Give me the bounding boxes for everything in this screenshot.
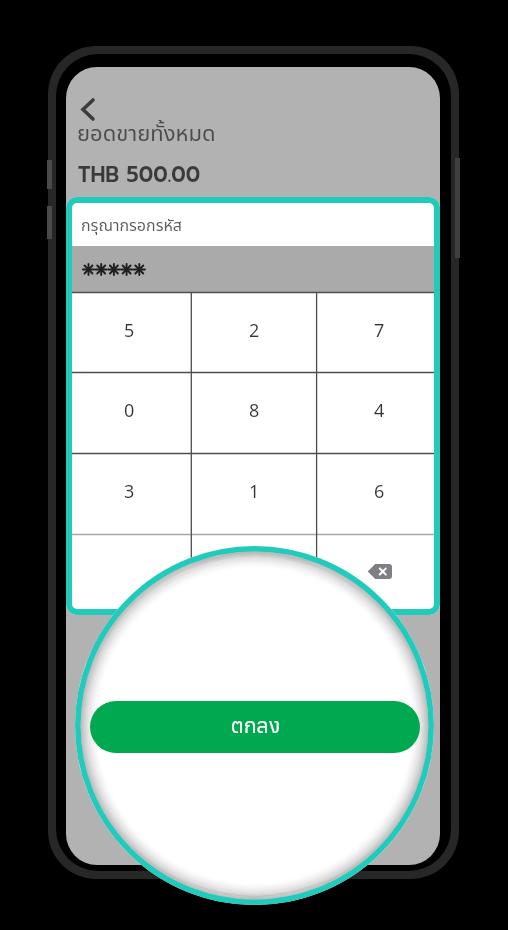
button[interactable]: 2 [190, 292, 316, 372]
staticText: 0 [124, 398, 135, 425]
staticText: 5 [124, 318, 135, 345]
staticText: กรุณากรอกรหัส [81, 214, 182, 238]
staticText: ตกลง [231, 711, 280, 738]
button[interactable] [190, 534, 316, 609]
staticText: 2 [249, 318, 260, 345]
staticText: 7 [374, 318, 385, 345]
button[interactable]: 5 [66, 292, 190, 372]
staticText: THB 500.00 [78, 159, 201, 191]
staticText: ยอดขายทั้งหมด [77, 118, 216, 151]
staticText: 6 [374, 479, 385, 506]
button[interactable]: Backspace [316, 534, 440, 609]
button[interactable] [66, 534, 190, 609]
other: Backspace [367, 564, 392, 579]
staticText: 8 [249, 398, 260, 425]
button[interactable]: 6 [316, 453, 440, 534]
button[interactable]: 3 [66, 453, 190, 534]
staticText: 3 [124, 479, 135, 506]
button[interactable]: 4 [316, 372, 440, 453]
button[interactable]: 0 [66, 372, 190, 453]
staticText: 1 [249, 479, 260, 506]
button[interactable]: ตกลง [90, 701, 420, 753]
staticText: 4 [374, 398, 385, 425]
button[interactable]: Back [70, 91, 106, 127]
button[interactable]: 7 [316, 292, 440, 372]
button[interactable]: 1 [190, 453, 316, 534]
button[interactable]: 8 [190, 372, 316, 453]
